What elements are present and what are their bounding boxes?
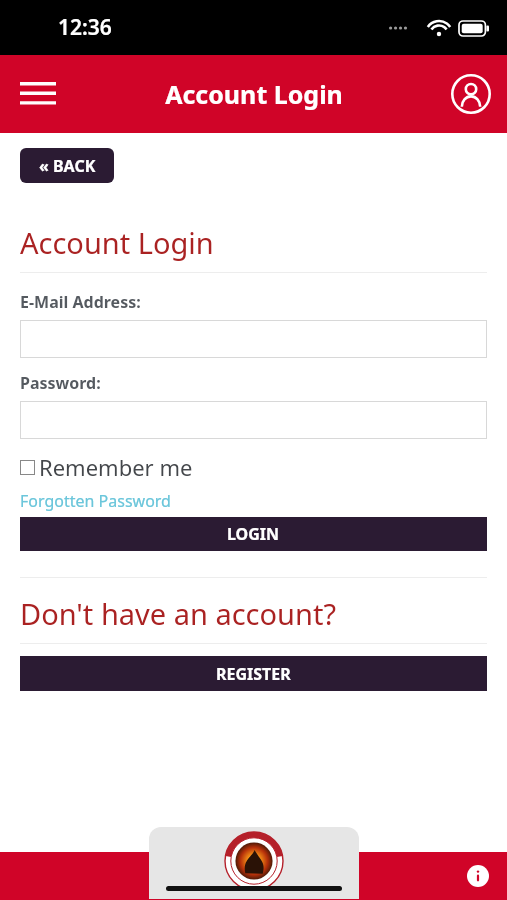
staticText: 12:36 [58, 13, 112, 42]
staticText: Remember me [39, 452, 193, 482]
button[interactable] [20, 320, 487, 358]
staticText: « BACK [39, 155, 96, 177]
button[interactable]: Account [447, 70, 495, 118]
staticText: Account Login [20, 223, 214, 262]
button[interactable]: Forgotten Password [20, 490, 171, 512]
staticText: E-Mail Address: [20, 291, 141, 313]
button[interactable]: « BACK [20, 148, 114, 183]
staticText: REGISTER [216, 663, 291, 685]
staticText: Account Login [165, 77, 343, 111]
staticText: Don't have an account? [20, 594, 336, 633]
button[interactable]: Information [463, 861, 493, 891]
button[interactable]: Remember me [20, 452, 193, 482]
button[interactable]: Menu [14, 70, 62, 118]
button[interactable]: REGISTER [20, 656, 487, 691]
button[interactable] [20, 401, 487, 439]
staticText: Forgotten Password [20, 490, 171, 512]
button[interactable]: LOGIN [20, 517, 487, 551]
staticText: LOGIN [227, 523, 280, 545]
staticText: Password: [20, 372, 101, 394]
button[interactable]: My Grill home [149, 827, 359, 899]
